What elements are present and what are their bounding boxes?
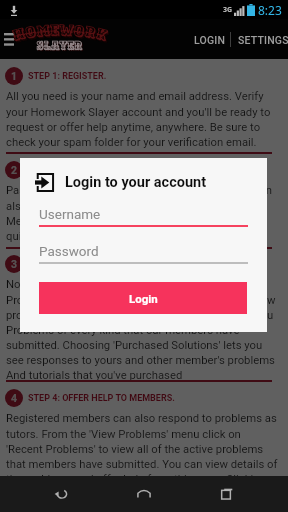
staticText: Login: [129, 292, 158, 305]
button[interactable]: 3: [5, 255, 138, 273]
staticText: 4: [11, 392, 18, 404]
staticText: 3: [11, 258, 18, 270]
button[interactable]: 1: [5, 67, 107, 85]
button[interactable]: LOGIN: [186, 25, 234, 55]
other: Homework Slayer: [14, 21, 110, 55]
button[interactable]: Menu: [0, 27, 18, 51]
staticText: STEP 4: OFFER HELP TO MEMBERS.: [28, 393, 175, 404]
staticText: STEP 3: VIEW SOLUTIONS.: [28, 259, 138, 270]
staticText: STEP 2: POST A PROBLEM.: [28, 165, 140, 176]
staticText: 3G: [223, 5, 233, 15]
button[interactable]: Login: [39, 282, 247, 314]
button[interactable]: 2: [5, 161, 140, 179]
button[interactable]: Recents: [205, 476, 249, 512]
staticText: Paste your problem text or take a photo …: [6, 184, 279, 243]
staticText: Username: [39, 206, 101, 222]
button[interactable]: SETTINGS: [230, 25, 288, 55]
staticText: Registered members can also respond to p…: [6, 412, 279, 486]
staticText: No need to wait for an answer to your pr…: [6, 278, 279, 382]
staticText: LOGIN: [194, 34, 226, 46]
other: Login: [35, 172, 56, 193]
staticText: 1: [11, 70, 18, 82]
staticText: SETTINGS: [238, 34, 288, 46]
button[interactable]: Password: [39, 243, 248, 264]
staticText: Login to your account: [65, 174, 207, 191]
staticText: All you need is your name and email addr…: [6, 90, 279, 149]
button[interactable]: 4: [5, 389, 175, 407]
button[interactable]: Back: [39, 476, 83, 512]
staticText: 8:23: [258, 2, 282, 18]
button[interactable]: Home: [122, 476, 166, 512]
staticText: Password: [39, 243, 99, 259]
button[interactable]: Username: [39, 206, 248, 227]
staticText: STEP 1: REGISTER.: [28, 71, 107, 82]
staticText: 2: [11, 164, 18, 176]
